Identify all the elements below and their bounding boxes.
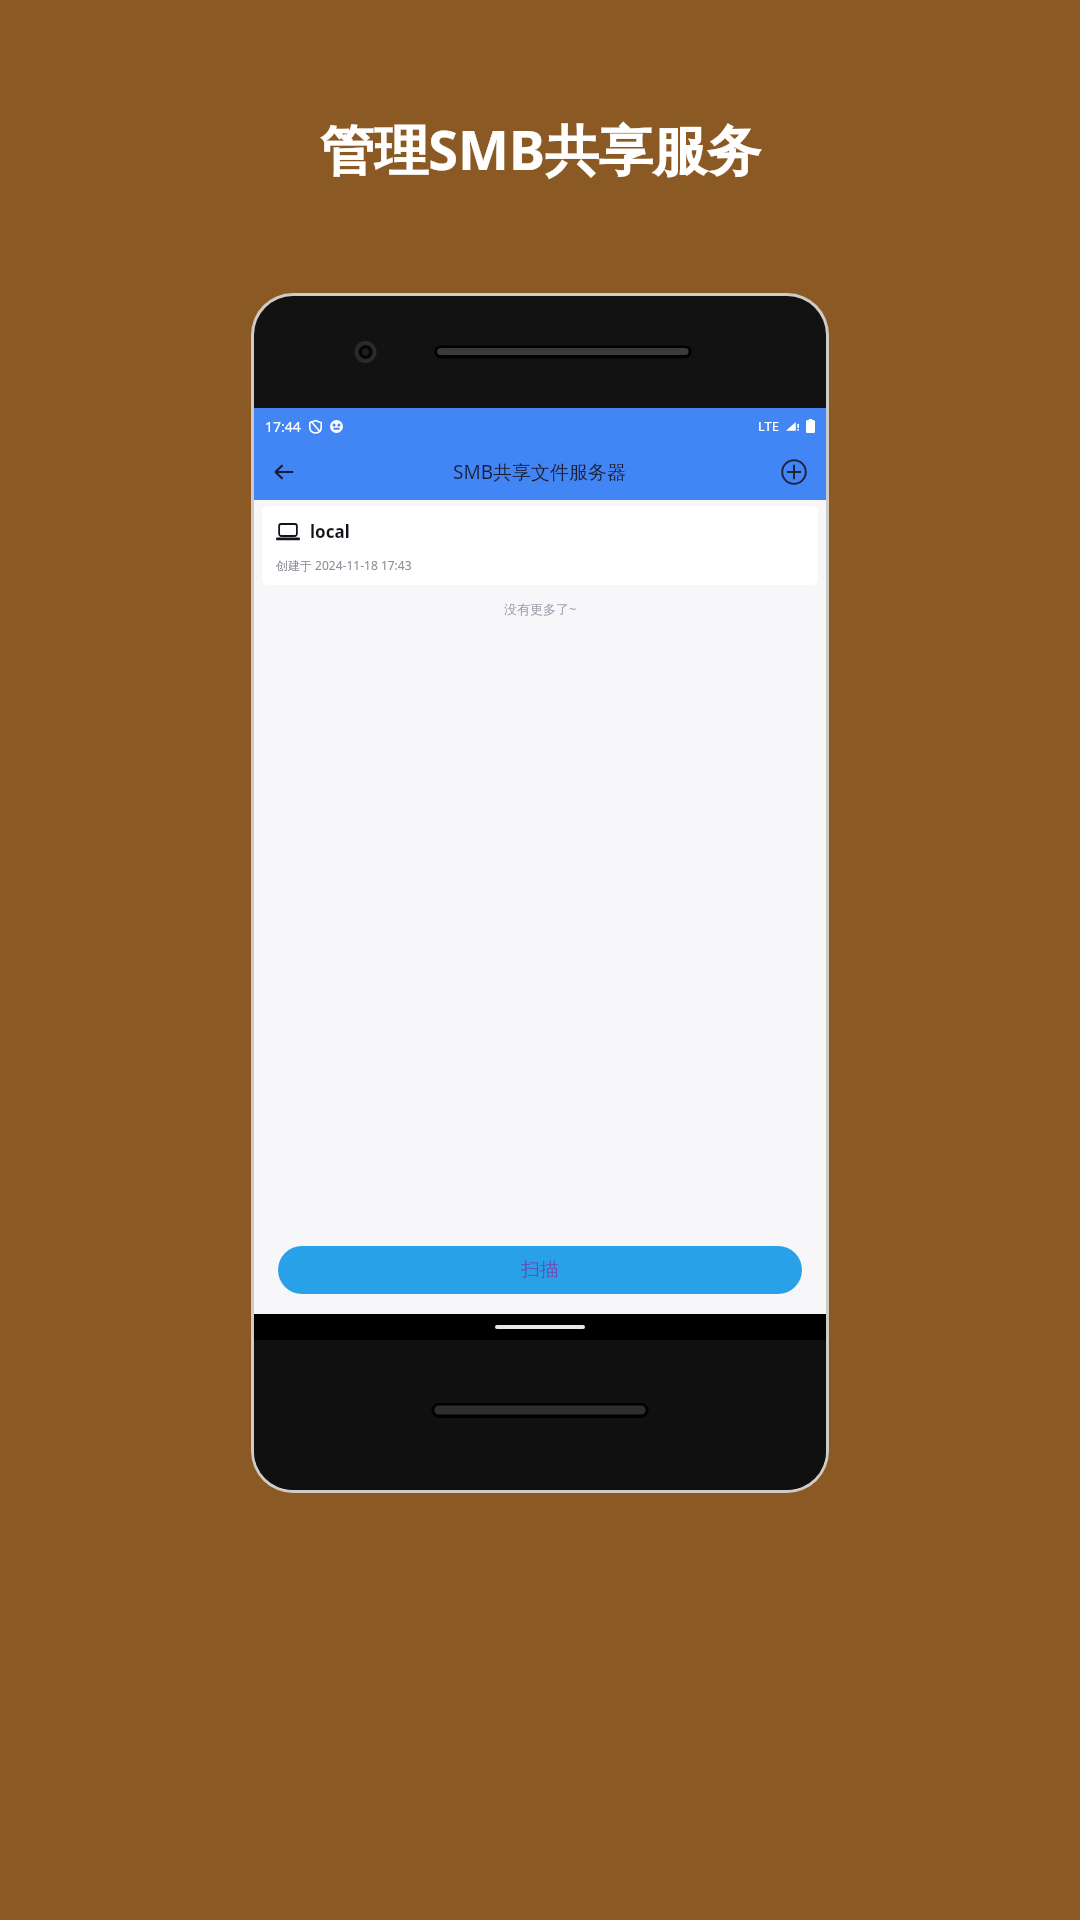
staticText: 创建于 2024-11-18 17:43 <box>276 557 412 573</box>
staticText: 管理SMB共享服务 <box>320 112 761 186</box>
button[interactable]: 扫描 <box>278 1246 802 1294</box>
button[interactable]: Add server <box>772 450 816 494</box>
staticText: LTE <box>758 417 780 435</box>
staticText: 没有更多了~ <box>504 600 577 618</box>
staticText: local <box>310 520 350 543</box>
staticText: 17:44 <box>265 417 301 436</box>
button[interactable]: local <box>262 506 818 585</box>
staticText: SMB共享文件服务器 <box>453 459 627 485</box>
button[interactable]: Back <box>260 448 308 496</box>
staticText: 扫描 <box>521 1258 559 1282</box>
